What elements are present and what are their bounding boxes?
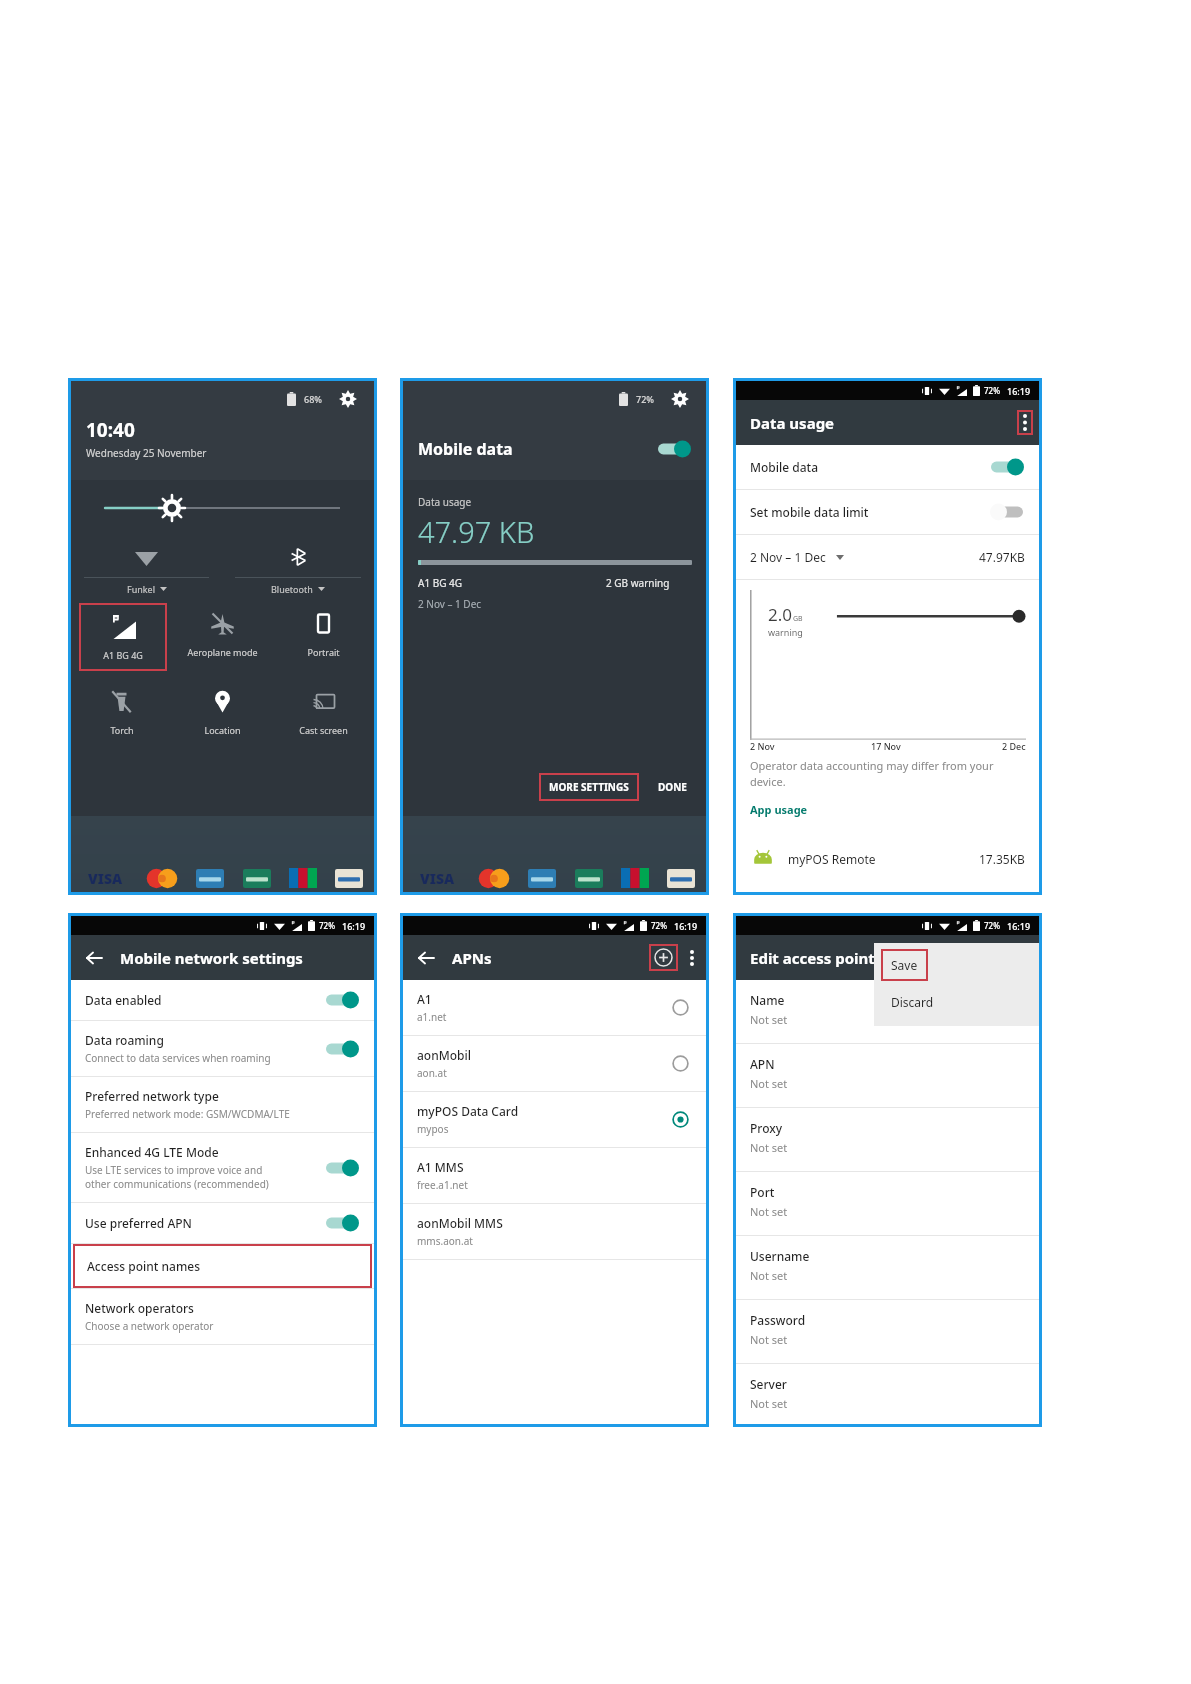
button[interactable]: A1 MMS xyxy=(403,1148,706,1203)
staticText: GB xyxy=(793,614,803,624)
button[interactable]: 2 Nov – 1 Dec xyxy=(736,535,1039,579)
button[interactable]: Access point names xyxy=(73,1244,372,1288)
button[interactable]: Bluetooth xyxy=(222,536,374,600)
staticText: A1 xyxy=(417,991,432,1007)
staticText: Preferred network type xyxy=(85,1088,219,1104)
button[interactable]: App usage xyxy=(750,802,808,817)
staticText: mypos xyxy=(417,1122,449,1136)
staticText: Set mobile data limit xyxy=(750,504,869,520)
staticText: 16:19 xyxy=(674,920,698,932)
button[interactable]: Settings xyxy=(337,388,359,410)
button[interactable]: Back xyxy=(81,945,107,971)
staticText: 72% xyxy=(651,920,667,931)
button[interactable]: Discard xyxy=(874,981,1039,1026)
staticText: 2 Dec xyxy=(1002,740,1026,752)
staticText: Name xyxy=(750,992,785,1008)
button[interactable]: myPOS Data Card xyxy=(403,1092,706,1147)
staticText: Not set xyxy=(750,1204,788,1219)
button[interactable]: Back xyxy=(413,945,439,971)
staticText: Password xyxy=(750,1312,806,1328)
button[interactable]: aonMobil xyxy=(403,1036,706,1091)
button[interactable]: Location xyxy=(172,678,273,752)
staticText: Operator data accounting may differ from… xyxy=(750,758,994,789)
button[interactable]: Cast screen xyxy=(273,678,374,752)
button[interactable]: Name xyxy=(736,980,1039,1043)
staticText: Not set xyxy=(750,1012,788,1027)
button[interactable]: Proxy xyxy=(736,1108,1039,1171)
staticText: 10:40 xyxy=(86,417,135,443)
staticText: Not set xyxy=(750,1140,788,1155)
staticText: mms.aon.at xyxy=(417,1234,473,1248)
staticText: Port xyxy=(750,1184,775,1200)
staticText: 72% xyxy=(984,920,1000,931)
staticText: Mobile network settings xyxy=(120,948,303,968)
staticText: Use LTE services to improve voice and ot… xyxy=(85,1163,269,1191)
button[interactable]: Port xyxy=(736,1172,1039,1235)
staticText: 2 GB warning xyxy=(606,576,670,590)
button[interactable]: Use preferred APN xyxy=(71,1203,374,1243)
button[interactable]: Add APN xyxy=(649,944,678,971)
staticText: Not set xyxy=(750,1332,788,1347)
button[interactable]: DONE xyxy=(653,773,692,801)
staticText: 16:19 xyxy=(1007,385,1031,397)
staticText: 17.35KB xyxy=(979,851,1025,867)
staticText: free.a1.net xyxy=(417,1178,468,1192)
button[interactable]: Enhanced 4G LTE Mode xyxy=(71,1133,374,1202)
button[interactable]: myPOS Remote xyxy=(736,826,1039,892)
staticText: A1 BG 4G xyxy=(103,649,143,661)
button[interactable]: APN xyxy=(736,1044,1039,1107)
staticText: Funkel xyxy=(127,583,155,595)
button[interactable]: Torch xyxy=(71,678,172,752)
button[interactable]: Username xyxy=(736,1236,1039,1299)
staticText: Data roaming xyxy=(85,1032,164,1048)
button[interactable]: Server xyxy=(736,1364,1039,1424)
staticText: Use preferred APN xyxy=(85,1215,192,1231)
button[interactable]: Settings xyxy=(669,388,691,410)
button[interactable]: aonMobil MMS xyxy=(403,1204,706,1259)
staticText: Access point names xyxy=(87,1258,201,1274)
staticText: 72% xyxy=(319,920,335,931)
staticText: Aeroplane mode xyxy=(187,646,258,658)
button[interactable]: Set mobile data limit xyxy=(736,490,1039,534)
staticText: a1.net xyxy=(417,1010,447,1024)
staticText: Not set xyxy=(750,1396,788,1411)
staticText: Proxy xyxy=(750,1120,783,1136)
staticText: VISA xyxy=(88,869,123,888)
staticText: VISA xyxy=(420,869,455,888)
staticText: Edit access point xyxy=(750,948,875,968)
button[interactable]: A1 BG 4G xyxy=(79,603,167,671)
staticText: aon.at xyxy=(417,1066,447,1080)
staticText: Mobile data xyxy=(418,438,656,460)
button[interactable]: Mobile data xyxy=(736,445,1039,489)
button[interactable]: MORE SETTINGS xyxy=(539,773,639,801)
button[interactable]: Network operators xyxy=(71,1289,374,1344)
button[interactable]: A1 xyxy=(403,980,706,1035)
button[interactable]: More options xyxy=(683,949,701,967)
staticText: APNs xyxy=(452,948,649,968)
staticText: Data enabled xyxy=(85,992,162,1008)
button[interactable]: Preferred network type xyxy=(71,1077,374,1132)
button[interactable]: More options xyxy=(1017,410,1033,435)
staticText: Save xyxy=(891,957,918,973)
staticText: DONE xyxy=(658,780,687,794)
staticText: Choose a network operator xyxy=(85,1319,214,1333)
staticText: 47.97 KB xyxy=(418,512,535,551)
staticText: Enhanced 4G LTE Mode xyxy=(85,1144,219,1160)
button[interactable]: Funkel xyxy=(71,536,222,600)
button[interactable]: Portrait xyxy=(273,600,374,678)
staticText: 2 Nov – 1 Dec xyxy=(418,597,482,611)
button[interactable]: Mobile data toggle xyxy=(656,440,692,458)
staticText: Portrait xyxy=(307,646,340,658)
button[interactable]: Data roaming xyxy=(71,1021,374,1076)
staticText: Torch xyxy=(110,724,134,736)
staticText: aonMobil MMS xyxy=(417,1215,503,1231)
button[interactable]: Aeroplane mode xyxy=(172,600,273,678)
staticText: Location xyxy=(204,724,241,736)
staticText: myPOS Data Card xyxy=(417,1103,519,1119)
staticText: Username xyxy=(750,1248,810,1264)
staticText: Data usage xyxy=(750,413,1017,433)
button[interactable]: Save xyxy=(881,949,928,981)
button[interactable]: Password xyxy=(736,1300,1039,1363)
staticText: Not set xyxy=(750,1268,788,1283)
button[interactable]: Data enabled xyxy=(71,980,374,1020)
